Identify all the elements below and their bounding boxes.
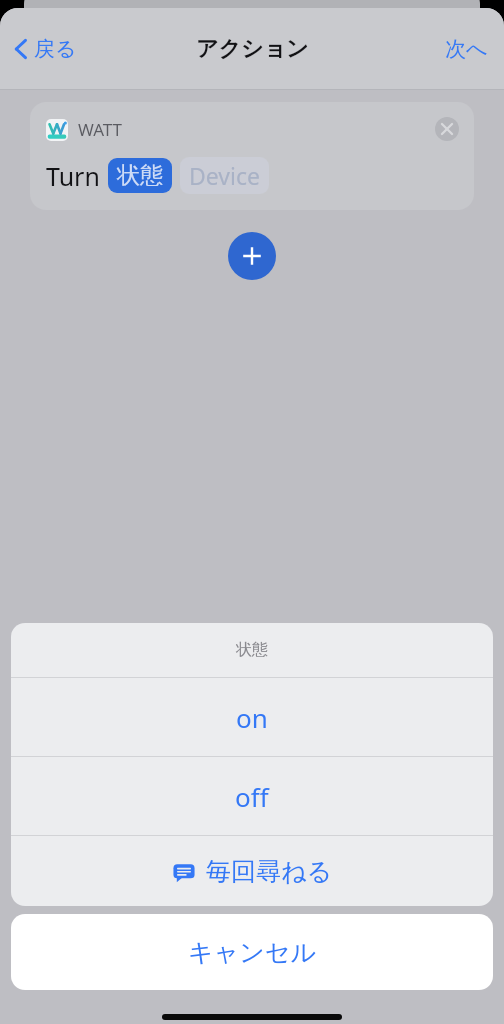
staticText: off [235, 779, 269, 814]
button[interactable]: on [11, 678, 493, 756]
button[interactable]: 戻る [10, 30, 81, 68]
staticText: 戻る [34, 36, 77, 62]
staticText: Turn [46, 159, 100, 193]
button[interactable]: Add action [228, 232, 276, 280]
staticText: 状態 [236, 640, 268, 660]
button[interactable]: WATT [30, 102, 474, 210]
staticText: アクション [196, 35, 309, 63]
button[interactable]: Remove action [432, 114, 462, 144]
button[interactable]: 次へ [441, 30, 492, 68]
staticText: Device [189, 160, 260, 191]
staticText: 状態 [117, 161, 163, 190]
button[interactable]: キャンセル [11, 914, 493, 990]
staticText: WATT [78, 118, 123, 141]
button[interactable]: Device [180, 157, 269, 194]
staticText: on [236, 700, 268, 735]
button[interactable]: 毎回尋ねる [11, 836, 493, 906]
button[interactable]: off [11, 757, 493, 835]
staticText: 毎回尋ねる [206, 856, 333, 887]
staticText: 次へ [445, 36, 488, 62]
button[interactable]: 状態 [108, 158, 172, 193]
staticText: キャンセル [188, 937, 316, 968]
